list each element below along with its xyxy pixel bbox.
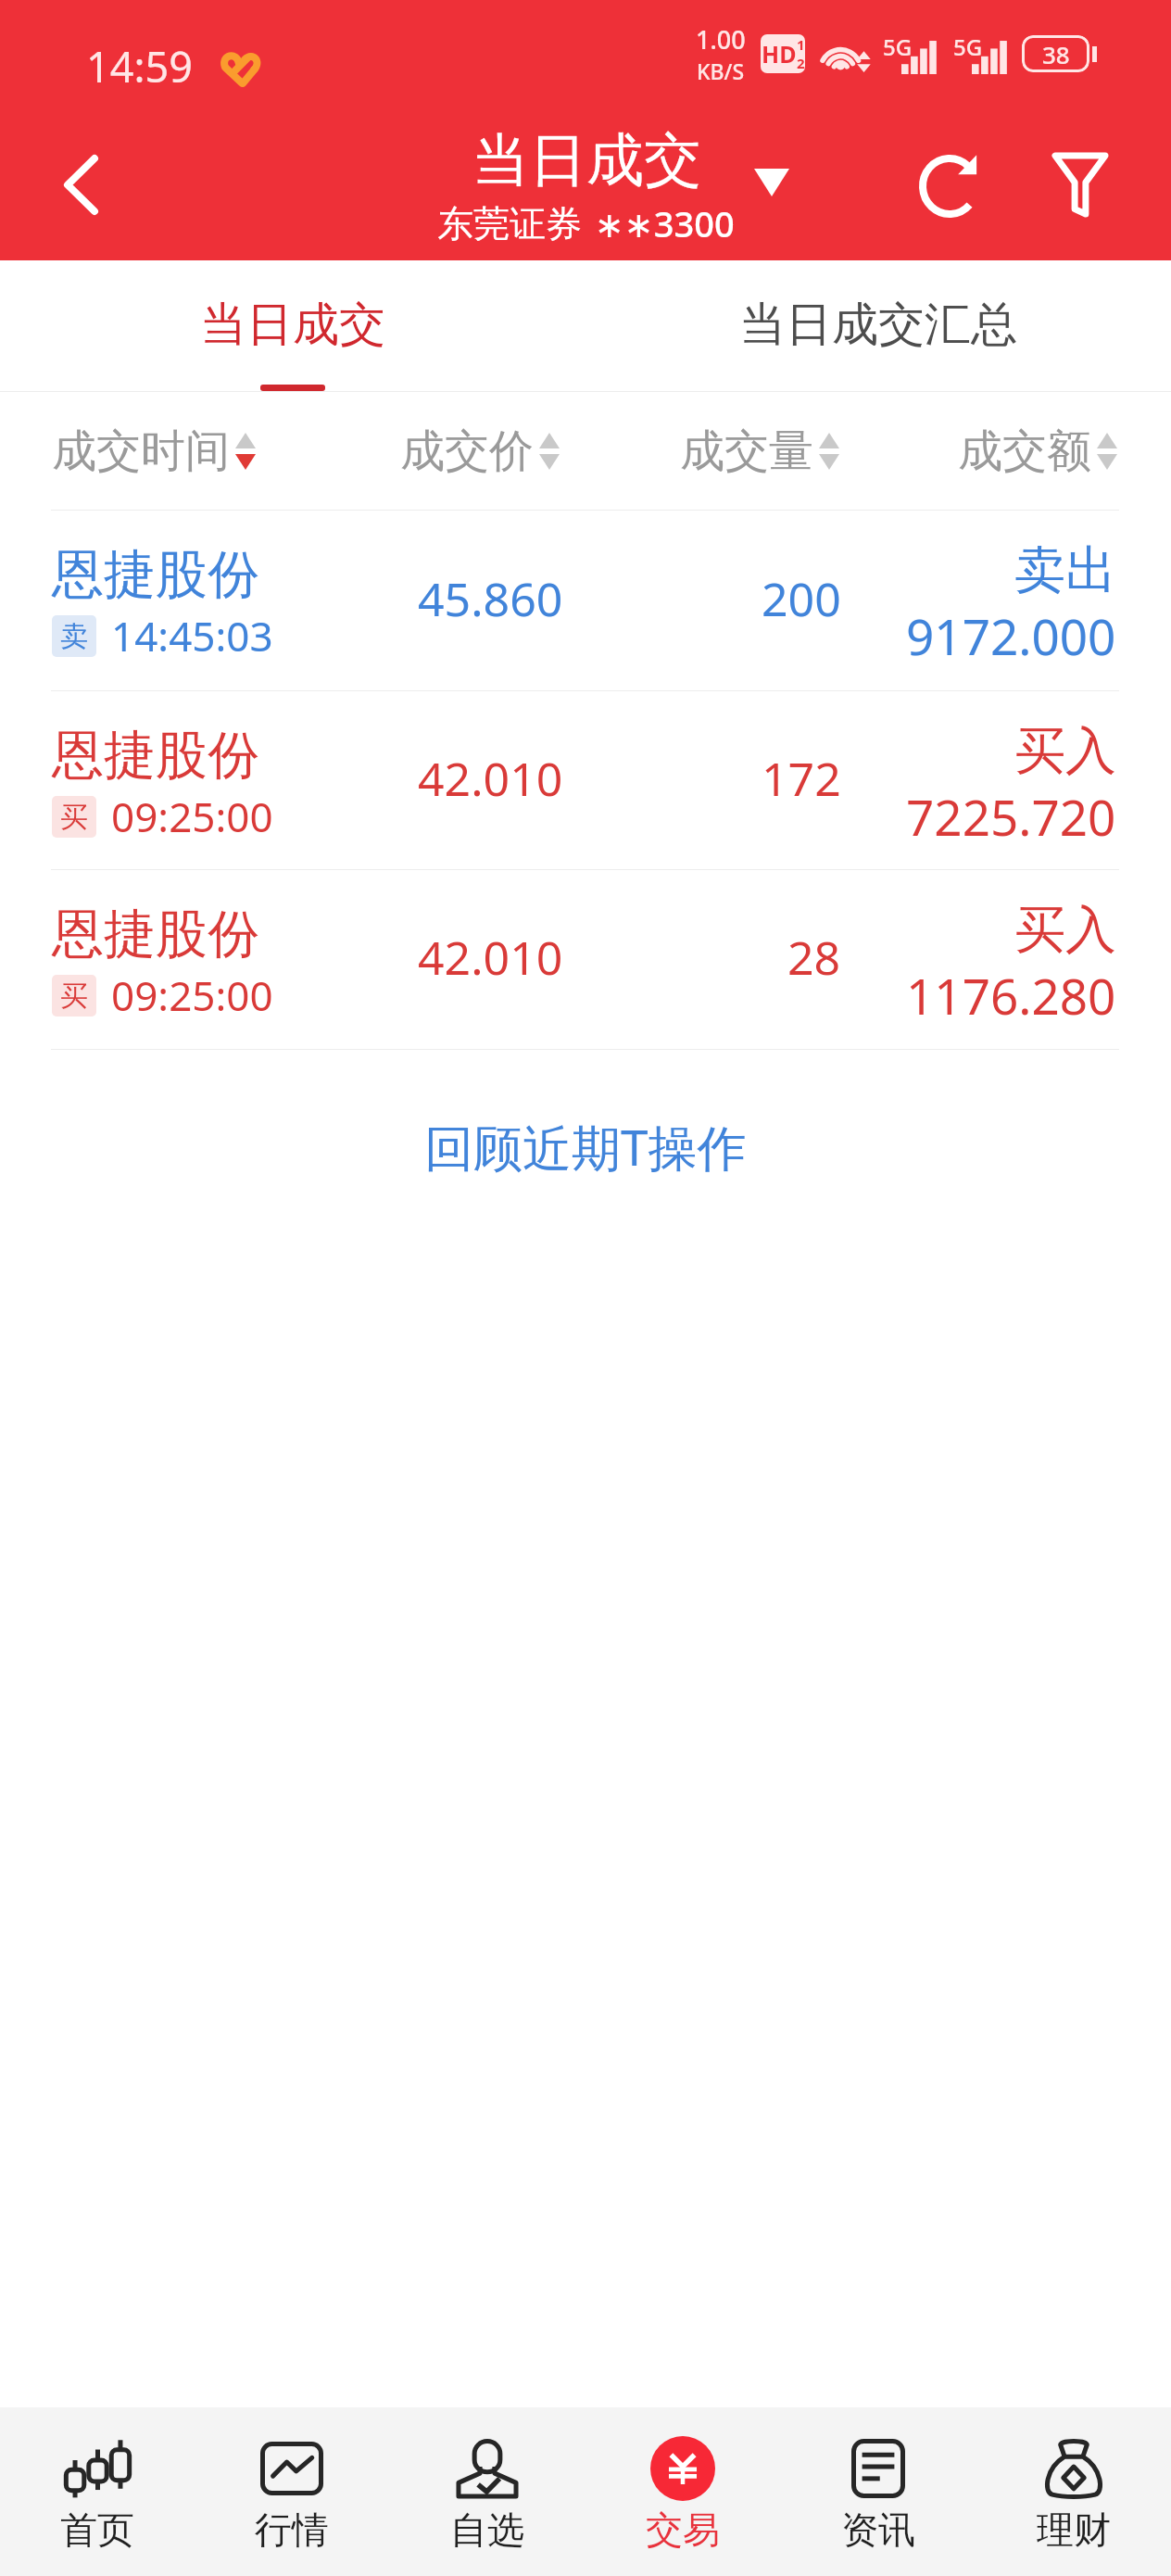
button[interactable]: 首页 (0, 2407, 195, 2576)
staticText: 成交量 (680, 423, 813, 479)
staticText: 42.010 (418, 747, 563, 810)
staticText: 当日成交汇总 (739, 296, 1017, 354)
button[interactable]: 成交额 (958, 423, 1117, 479)
staticText: 当日成交 (200, 296, 385, 354)
staticText: 成交价 (400, 423, 534, 479)
staticText: KB/S (697, 57, 745, 85)
button[interactable]: Refresh (885, 109, 1014, 260)
staticText: 200 (762, 567, 841, 630)
staticText: 首页 (60, 2507, 134, 2553)
staticText: 卖出 (1014, 538, 1116, 602)
button[interactable]: 恩捷股份 (0, 511, 1171, 691)
button[interactable]: 成交时间 (52, 423, 256, 479)
staticText: 1.00 (696, 22, 746, 57)
staticText: 42.010 (418, 926, 563, 989)
button[interactable]: 恩捷股份 (0, 870, 1171, 1050)
staticText: 买入 (1014, 898, 1116, 962)
staticText: 东莞证券 (437, 201, 582, 246)
staticText: 行情 (255, 2507, 329, 2553)
button[interactable]: 资讯 (780, 2407, 976, 2576)
button[interactable]: 理财 (976, 2407, 1171, 2576)
button[interactable]: 成交价 (400, 423, 560, 479)
staticText: 1 (797, 35, 805, 54)
staticText: 恩捷股份 (52, 542, 259, 608)
staticText: 38 (1042, 38, 1070, 70)
button[interactable]: 成交量 (680, 423, 839, 479)
button[interactable]: 恩捷股份 (0, 691, 1171, 870)
staticText: 172 (762, 747, 841, 810)
staticText: 7225.720 (906, 783, 1116, 850)
button[interactable]: 当日成交 (0, 260, 585, 392)
button[interactable]: 行情 (195, 2407, 389, 2576)
staticText: 5G (953, 32, 983, 62)
staticText: 当日成交 (472, 124, 701, 196)
staticText: 28 (787, 926, 841, 989)
staticText: 卖 (60, 619, 88, 654)
staticText: 2 (797, 54, 805, 72)
button[interactable]: 交易 (585, 2407, 780, 2576)
staticText: 14:45:03 (111, 608, 273, 663)
button[interactable]: Back (0, 109, 162, 260)
staticText: 资讯 (841, 2507, 915, 2553)
staticText: 1176.280 (906, 962, 1116, 1029)
button[interactable]: 自选 (389, 2407, 585, 2576)
staticText: 45.860 (418, 567, 563, 630)
staticText: 9172.000 (906, 602, 1116, 669)
staticText: 理财 (1037, 2507, 1111, 2553)
staticText: 09:25:00 (111, 789, 273, 844)
staticText: 成交时间 (52, 423, 230, 479)
button[interactable]: Filter (1015, 109, 1145, 260)
staticText: 恩捷股份 (52, 902, 259, 967)
staticText: ∗∗3300 (595, 199, 735, 247)
button[interactable]: Switch account (731, 136, 812, 210)
staticText: 14:59 (86, 38, 194, 95)
staticText: 买 (60, 800, 88, 835)
staticText: 自选 (450, 2507, 524, 2553)
staticText: 恩捷股份 (52, 723, 259, 789)
staticText: 买 (60, 979, 88, 1014)
staticText: 买入 (1014, 719, 1116, 783)
staticText: 回顾近期T操作 (424, 1113, 747, 1180)
button[interactable]: 当日成交汇总 (585, 260, 1171, 392)
staticText: HD (762, 38, 797, 69)
staticText: 成交额 (958, 423, 1091, 479)
staticText: 交易 (646, 2507, 720, 2553)
button[interactable]: 回顾近期T操作 (397, 1102, 774, 1191)
staticText: 09:25:00 (111, 967, 273, 1023)
staticText: 5G (883, 32, 913, 62)
